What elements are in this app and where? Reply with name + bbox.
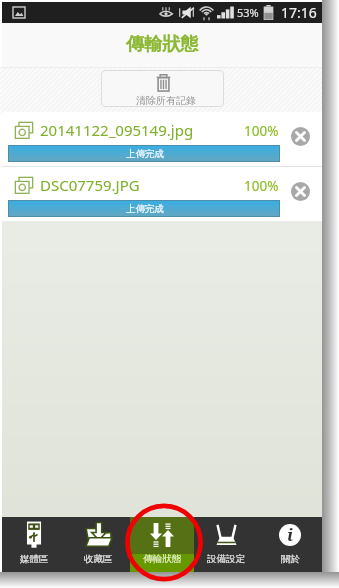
staticText: 傳輸狀態: [126, 33, 198, 56]
staticText: 20141122_095149.jpg: [40, 120, 194, 140]
staticText: 上傳完成: [126, 203, 164, 215]
button[interactable]: 傳輸狀態: [130, 517, 194, 574]
button[interactable]: DSC07759.JPG: [2, 167, 322, 221]
button[interactable]: 設備設定: [194, 517, 258, 574]
staticText: 關於: [281, 553, 300, 565]
staticText: 收藏區: [84, 553, 113, 565]
staticText: i: [287, 523, 294, 545]
staticText: 媒體區: [20, 553, 49, 565]
staticText: DSC07759.JPG: [40, 175, 140, 195]
button[interactable]: 收藏區: [66, 517, 130, 574]
button[interactable]: Remove item: [291, 127, 310, 146]
staticText: 53%: [237, 5, 259, 20]
staticText: 清除所有記錄: [136, 94, 196, 107]
button[interactable]: Remove item: [291, 182, 310, 201]
button[interactable]: i: [258, 517, 322, 574]
staticText: 100%: [244, 122, 279, 140]
button[interactable]: 清除所有記錄: [101, 70, 224, 107]
staticText: 設備設定: [207, 553, 245, 565]
button[interactable]: 媒體區: [2, 517, 66, 574]
button[interactable]: 20141122_095149.jpg: [2, 112, 322, 166]
staticText: 17:16: [281, 3, 317, 22]
staticText: 上傳完成: [126, 148, 164, 160]
staticText: 傳輸狀態: [143, 553, 181, 565]
staticText: 100%: [244, 177, 279, 195]
